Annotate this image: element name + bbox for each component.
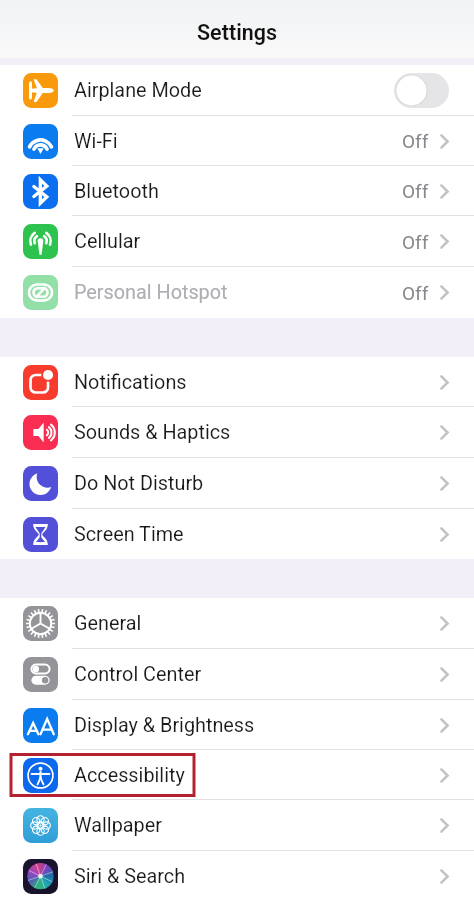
button[interactable]: Accessibility xyxy=(0,750,474,800)
staticText: Airplane Mode xyxy=(74,79,202,102)
button[interactable]: Control Center xyxy=(0,649,474,700)
staticText: Wi-Fi xyxy=(74,130,118,153)
staticText: Personal Hotspot xyxy=(74,281,228,304)
other: Airplane Mode toggle xyxy=(394,73,449,108)
staticText: Wallpaper xyxy=(74,814,162,837)
button[interactable]: Bluetooth xyxy=(0,166,474,216)
staticText: Notifications xyxy=(74,371,187,394)
staticText: Cellular xyxy=(74,230,141,253)
button[interactable]: Cellular xyxy=(0,216,474,267)
staticText: Off xyxy=(402,180,429,202)
button[interactable]: Display & Brightness xyxy=(0,700,474,750)
button[interactable]: Do Not Disturb xyxy=(0,458,474,509)
button[interactable]: Airplane Mode xyxy=(0,65,474,116)
staticText: Sounds & Haptics xyxy=(74,421,231,444)
button[interactable]: Screen Time xyxy=(0,509,474,559)
staticText: Off xyxy=(402,282,429,304)
button[interactable]: General xyxy=(0,598,474,649)
button[interactable]: Sounds & Haptics xyxy=(0,407,474,458)
button[interactable]: Wi-Fi xyxy=(0,116,474,166)
button[interactable]: Wallpaper xyxy=(0,800,474,851)
staticText: Accessibility xyxy=(74,764,185,787)
staticText: Screen Time xyxy=(74,523,184,546)
staticText: Off xyxy=(402,231,429,253)
staticText: Settings xyxy=(197,20,278,45)
staticText: Siri & Search xyxy=(74,865,186,888)
button[interactable]: Personal Hotspot xyxy=(0,267,474,318)
staticText: Display & Brightness xyxy=(74,714,255,737)
staticText: Off xyxy=(402,130,429,152)
staticText: Control Center xyxy=(74,663,202,686)
staticText: General xyxy=(74,612,142,635)
staticText: Do Not Disturb xyxy=(74,472,204,495)
button[interactable]: Siri & Search xyxy=(0,851,474,901)
staticText: Bluetooth xyxy=(74,180,159,203)
button[interactable]: Notifications xyxy=(0,357,474,407)
